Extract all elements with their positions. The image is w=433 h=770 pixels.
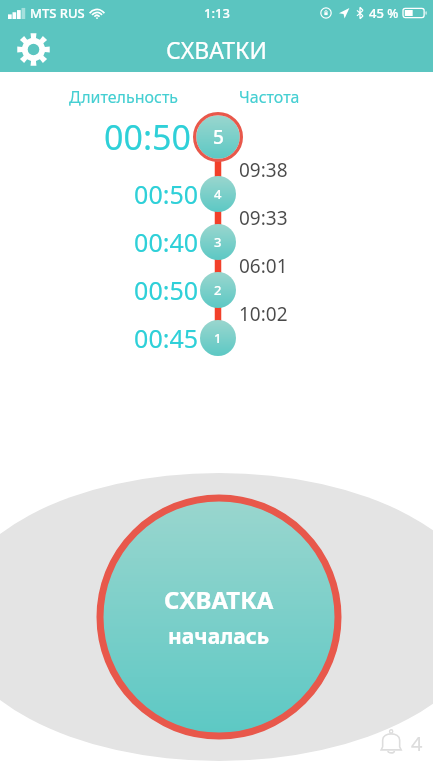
staticText: 09:33 xyxy=(239,205,288,231)
button[interactable]: СХВАТКА xyxy=(100,498,338,736)
staticText: СХВАТКИ xyxy=(166,34,267,65)
staticText: СХВАТКА xyxy=(164,583,274,616)
staticText: началась xyxy=(168,622,270,651)
staticText: 3 xyxy=(214,233,222,251)
staticText: 1 xyxy=(214,329,222,347)
button[interactable]: Settings xyxy=(12,28,54,70)
button[interactable]: 00:50 xyxy=(0,108,433,166)
staticText: 4 xyxy=(411,730,423,757)
button[interactable]: Notifications xyxy=(371,722,427,764)
staticText: 45 % xyxy=(369,4,399,22)
staticText: Длительность xyxy=(69,86,179,108)
staticText: Частота xyxy=(239,86,300,108)
staticText: 09:38 xyxy=(239,157,288,183)
staticText: 1:13 xyxy=(204,4,230,22)
staticText: 00:50 xyxy=(104,114,191,160)
staticText: 10:02 xyxy=(239,301,288,327)
staticText: 2 xyxy=(214,281,222,299)
staticText: 06:01 xyxy=(239,253,288,279)
staticText: 00:45 xyxy=(134,321,198,355)
staticText: 00:50 xyxy=(134,177,198,211)
staticText: 4 xyxy=(214,185,222,203)
staticText: 00:40 xyxy=(134,225,198,259)
button[interactable]: 00:40 xyxy=(0,220,433,264)
staticText: 00:50 xyxy=(134,273,198,307)
staticText: 5 xyxy=(213,124,224,150)
button[interactable]: 00:45 xyxy=(0,316,433,360)
button[interactable]: 00:50 xyxy=(0,172,433,216)
button[interactable]: 00:50 xyxy=(0,268,433,312)
staticText: MTS RUS xyxy=(30,4,85,22)
